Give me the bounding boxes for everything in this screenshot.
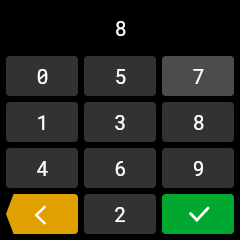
staticText: 4 — [36, 155, 49, 181]
button[interactable]: 2 — [84, 194, 156, 234]
button[interactable]: 9 — [162, 148, 234, 188]
button[interactable]: 8 — [162, 102, 234, 142]
staticText: 7 — [192, 63, 205, 89]
staticText: 0 — [36, 63, 49, 89]
staticText: 6 — [114, 155, 127, 181]
button[interactable]: 1 — [6, 102, 78, 142]
staticText: 2 — [114, 201, 127, 227]
button[interactable]: 0 — [6, 56, 78, 96]
staticText: 5 — [114, 63, 127, 89]
button[interactable]: 3 — [84, 102, 156, 142]
staticText: 9 — [192, 155, 205, 181]
staticText: 3 — [114, 109, 127, 135]
staticText: 8 — [192, 109, 205, 135]
button[interactable]: 5 — [84, 56, 156, 96]
button[interactable]: 7 — [162, 56, 234, 96]
staticText: 8 — [114, 15, 127, 41]
staticText: 1 — [36, 109, 49, 135]
button[interactable]: 4 — [6, 148, 78, 188]
button[interactable]: Confirm — [162, 194, 234, 234]
button[interactable]: Back — [6, 194, 78, 234]
button[interactable]: 6 — [84, 148, 156, 188]
